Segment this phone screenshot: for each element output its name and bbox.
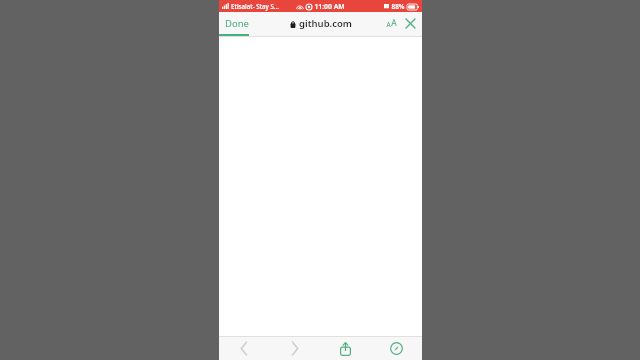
button[interactable]: Text size: [384, 15, 399, 31]
button[interactable]: Back: [219, 337, 269, 360]
staticText: Etisalat- Stay S...: [231, 2, 279, 10]
button[interactable]: Close: [404, 17, 417, 30]
staticText: 88%: [391, 2, 405, 11]
button[interactable]: Share: [320, 337, 371, 360]
button[interactable]: Open in Safari: [371, 337, 422, 360]
staticText: 11:00 AM: [314, 2, 345, 11]
button[interactable]: Forward: [269, 337, 320, 360]
button[interactable]: Done: [219, 14, 255, 33]
staticText: Done: [225, 17, 249, 30]
staticText: A: [391, 17, 397, 29]
staticText: A: [386, 20, 391, 29]
staticText: github.com: [299, 17, 352, 30]
